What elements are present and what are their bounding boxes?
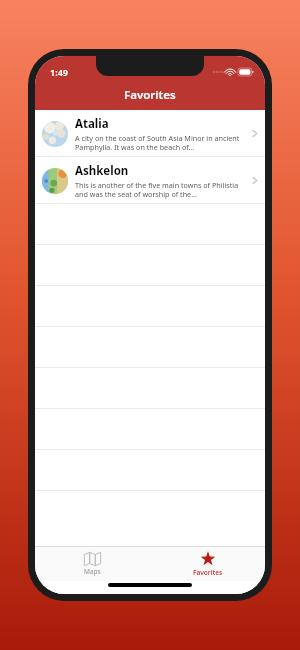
staticText: Favorites <box>193 568 223 577</box>
staticText: Atalia <box>75 116 109 132</box>
staticText: Maps <box>84 567 101 576</box>
button[interactable]: Favorites <box>150 547 265 581</box>
button[interactable]: Atalia <box>35 110 265 157</box>
staticText: Ashkelon <box>75 163 129 179</box>
staticText: A city on the coast of South Asia Minor … <box>75 133 247 152</box>
button[interactable]: Ashkelon <box>35 157 265 204</box>
staticText: This is another of the five main towns o… <box>75 180 247 199</box>
button[interactable]: Maps <box>35 547 150 581</box>
staticText: Favorites <box>124 87 176 103</box>
staticText: 1:49 <box>50 66 68 78</box>
